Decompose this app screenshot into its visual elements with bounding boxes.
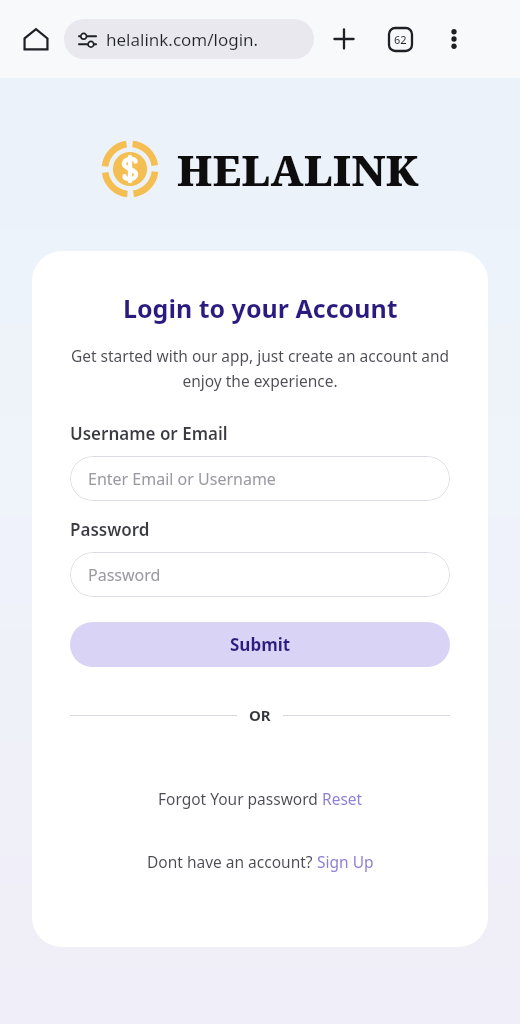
staticText: Username or Email — [70, 422, 228, 445]
staticText: Reset — [322, 788, 363, 809]
staticText: 62 — [394, 32, 407, 47]
staticText: HELALINK — [177, 141, 420, 198]
button[interactable]: More options — [434, 19, 474, 59]
staticText: Password — [70, 518, 150, 541]
staticText: Submit — [230, 633, 291, 656]
button[interactable]: New tab — [324, 19, 364, 59]
staticText: Dont have an account? — [147, 851, 317, 872]
staticText: Password — [88, 564, 161, 586]
button[interactable]: Dont have an account? — [147, 851, 374, 872]
button[interactable]: Password — [70, 552, 450, 597]
staticText: Sign Up — [317, 851, 374, 872]
button[interactable]: Enter Email or Username — [70, 456, 450, 501]
staticText: Forgot Your password — [158, 788, 322, 809]
staticText: helalink.com/login. — [106, 28, 259, 51]
button[interactable]: Home — [14, 17, 58, 61]
staticText: Get started with our app, just create an… — [70, 345, 450, 392]
button[interactable]: Tabs: 62 open — [380, 19, 420, 59]
button[interactable]: Submit — [70, 622, 450, 667]
button[interactable]: Forgot Your password — [158, 788, 363, 809]
staticText: Login to your Account — [123, 291, 398, 325]
staticText: Enter Email or Username — [88, 468, 276, 490]
staticText: OR — [249, 705, 271, 725]
button[interactable]: helalink.com/login. — [64, 19, 314, 59]
